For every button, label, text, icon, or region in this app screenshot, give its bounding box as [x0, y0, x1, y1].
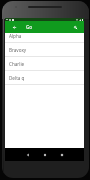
button[interactable]: Search	[69, 21, 82, 33]
button[interactable]: Navigate up	[8, 21, 21, 33]
button[interactable]: Charlie	[5, 57, 84, 71]
button[interactable]: Back	[23, 150, 33, 160]
staticText: Bravoxy	[9, 47, 27, 53]
button[interactable]: Delta q	[5, 71, 84, 85]
staticText: Delta q	[9, 75, 25, 81]
button[interactable]: Recents	[57, 150, 67, 160]
button[interactable]: Home	[40, 150, 50, 160]
staticText: Charlie	[9, 61, 25, 67]
button[interactable]: Alpha	[5, 29, 84, 43]
button[interactable]: Bravoxy	[5, 43, 84, 57]
staticText: Go	[26, 24, 33, 30]
staticText: Alpha	[9, 33, 22, 39]
